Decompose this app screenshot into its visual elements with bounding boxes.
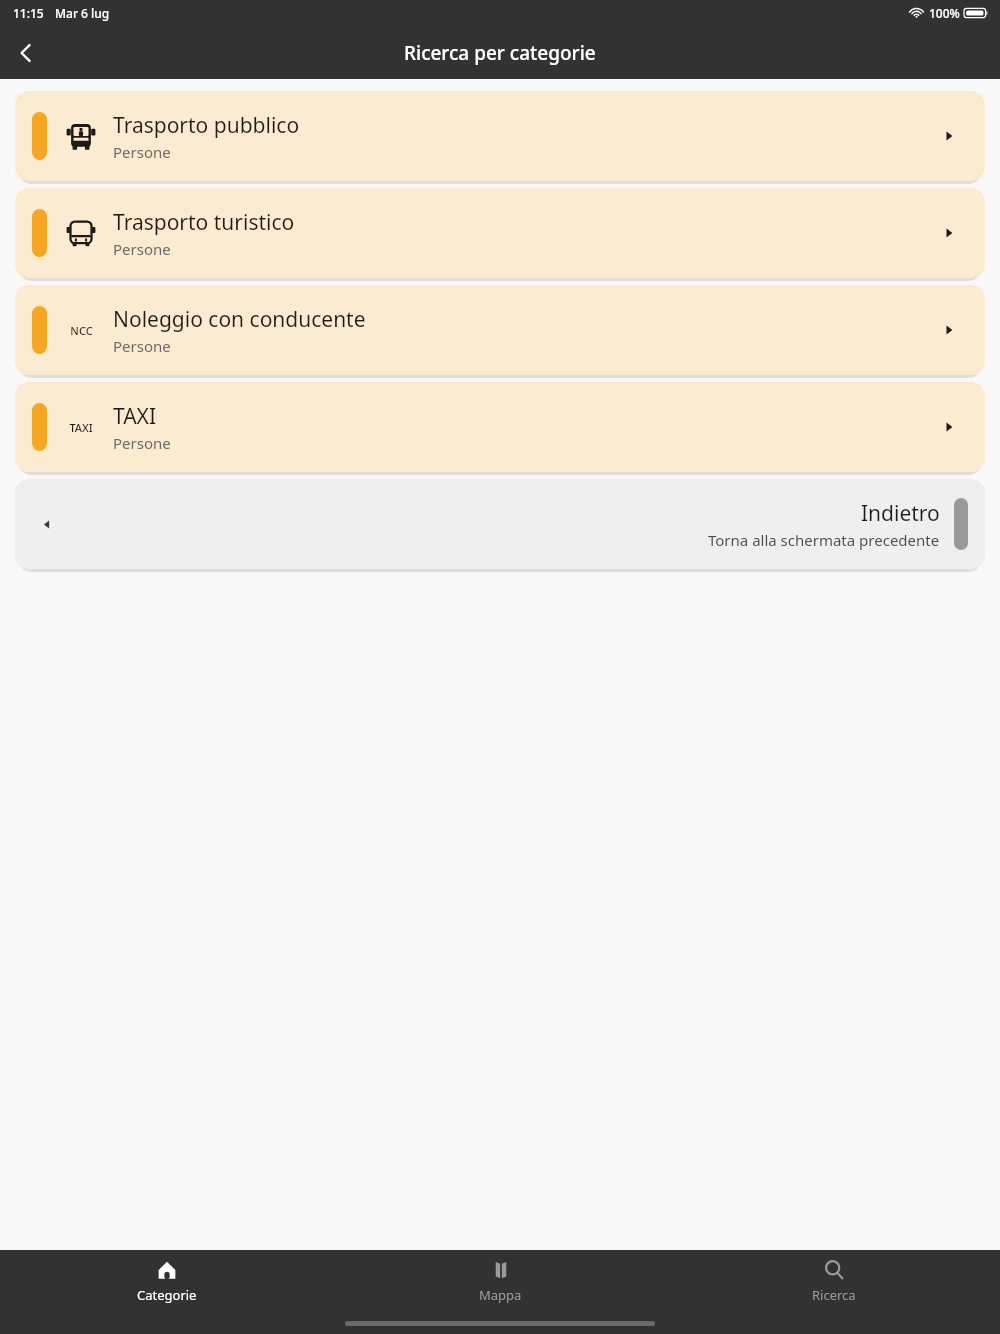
staticText: Mappa <box>479 1286 522 1304</box>
staticText: Indietro <box>861 499 940 528</box>
staticText: TAXI <box>113 402 157 431</box>
staticText: Noleggio con conducente <box>113 305 366 334</box>
button[interactable]: Back <box>0 27 52 79</box>
staticText: 100% <box>929 5 960 21</box>
button[interactable]: Ricerca <box>667 1250 1000 1312</box>
button[interactable]: Indietro <box>15 479 985 569</box>
button[interactable]: Trasporto turistico <box>15 188 985 278</box>
staticText: Mar 6 lug <box>55 5 110 21</box>
button[interactable]: NCC <box>15 285 985 375</box>
staticText: Ricerca per categorie <box>404 40 596 66</box>
button[interactable]: TAXI <box>15 382 985 472</box>
staticText: NCC <box>70 323 93 338</box>
staticText: Persone <box>113 239 171 259</box>
staticText: Persone <box>113 433 171 453</box>
button[interactable]: Categorie <box>0 1250 334 1312</box>
button[interactable]: Mappa <box>334 1250 667 1312</box>
staticText: Torna alla schermata precedente <box>708 530 940 550</box>
button[interactable]: Trasporto pubblico <box>15 91 985 181</box>
staticText: Trasporto turistico <box>113 208 295 237</box>
staticText: Trasporto pubblico <box>113 111 300 140</box>
staticText: Persone <box>113 142 171 162</box>
staticText: Persone <box>113 336 171 356</box>
staticText: Categorie <box>137 1286 197 1304</box>
staticText: Ricerca <box>812 1286 856 1304</box>
staticText: TAXI <box>69 420 93 435</box>
staticText: 11:15 <box>13 5 44 21</box>
